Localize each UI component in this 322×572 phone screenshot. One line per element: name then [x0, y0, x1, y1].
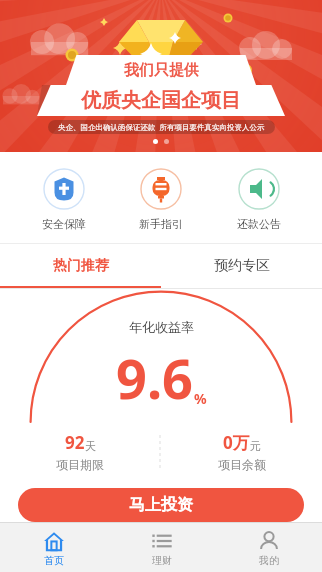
staticText: 新手指引 [139, 217, 183, 231]
staticText: 热门推荐 [53, 257, 109, 275]
staticText: 首页 [44, 554, 64, 567]
button[interactable]: 热门推荐 [0, 244, 161, 288]
button[interactable]: 预约专区 [161, 244, 322, 288]
staticText: 央企、国企出确认函保证还款 所有项目要件真实向投资人公示 [58, 122, 265, 132]
button[interactable]: 安全保障 [30, 166, 98, 233]
staticText: 元 [250, 439, 261, 453]
staticText: 预约专区 [214, 257, 270, 275]
button[interactable]: 还款公告 [225, 166, 293, 233]
staticText: 还款公告 [237, 217, 281, 231]
staticText: 理财 [152, 554, 172, 567]
staticText: 天 [85, 439, 96, 453]
staticText: 0万 [223, 431, 250, 454]
staticText: 安全保障 [42, 217, 86, 231]
staticText: 我的 [259, 554, 279, 567]
staticText: 我们只提供 [124, 61, 199, 80]
button[interactable]: 首页 [0, 523, 108, 572]
staticText: 马上投资 [129, 495, 193, 515]
staticText: 92 [65, 431, 85, 454]
staticText: 年化收益率 [129, 319, 194, 335]
staticText: 项目余额 [218, 457, 266, 472]
button[interactable]: 马上投资 [18, 488, 304, 522]
staticText: 项目期限 [56, 457, 104, 472]
staticText: 9.6 [116, 341, 193, 415]
button[interactable]: 新手指引 [127, 166, 195, 233]
staticText: 优质央企国企项目 [81, 88, 241, 113]
staticText: % [194, 389, 207, 408]
button[interactable]: 我的 [215, 523, 322, 572]
button[interactable]: 理财 [108, 523, 215, 572]
